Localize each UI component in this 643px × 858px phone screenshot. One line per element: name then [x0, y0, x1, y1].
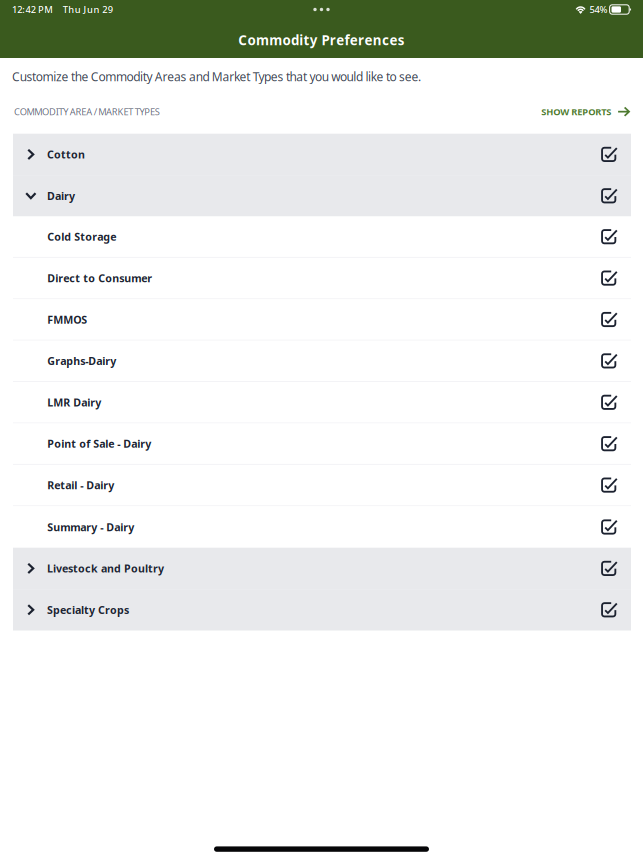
staticText: Cotton	[47, 147, 85, 161]
button[interactable]: Dairy	[13, 175, 631, 216]
staticText: Livestock and Poultry	[47, 561, 164, 575]
button[interactable]: Toggle LMR Dairy	[589, 383, 631, 422]
button[interactable]: Toggle Summary - Dairy	[589, 507, 631, 546]
staticText: FMMOS	[47, 312, 87, 327]
button[interactable]: Toggle Retail - Dairy	[589, 466, 631, 505]
button[interactable]: Cotton	[13, 134, 631, 175]
staticText: Thu Jun 29	[63, 3, 113, 16]
staticText: SHOW REPORTS	[541, 105, 611, 118]
staticText: Commodity Preferences	[238, 31, 405, 49]
staticText: Retail - Dairy	[47, 478, 114, 492]
button[interactable]: Toggle Graphs-Dairy	[589, 341, 631, 380]
staticText: LMR Dairy	[47, 395, 101, 409]
button[interactable]: Toggle Point of Sale - Dairy	[589, 424, 631, 463]
button[interactable]: Toggle Direct to Consumer	[589, 259, 631, 298]
button[interactable]: Livestock and Poultry	[13, 548, 631, 589]
button[interactable]: Cold Storage	[13, 216, 631, 258]
button[interactable]: SHOW REPORTS	[541, 105, 630, 118]
button[interactable]: LMR Dairy	[13, 382, 631, 423]
button[interactable]: Toggle Dairy	[589, 176, 631, 215]
button[interactable]: Point of Sale - Dairy	[13, 423, 631, 465]
button[interactable]: Toggle FMMOS	[589, 300, 631, 339]
button[interactable]: FMMOS	[13, 299, 631, 341]
button[interactable]: Toggle Cold Storage	[589, 217, 631, 256]
staticText: 54%	[590, 3, 608, 16]
staticText: Dairy	[47, 189, 75, 203]
button[interactable]: Direct to Consumer	[13, 258, 631, 299]
button[interactable]: Specialty Crops	[13, 589, 631, 630]
staticText: COMMODITY AREA / MARKET TYPES	[14, 105, 160, 118]
staticText: Summary - Dairy	[47, 520, 134, 534]
staticText: Cold Storage	[47, 230, 116, 244]
staticText: Direct to Consumer	[47, 271, 152, 285]
button[interactable]: Toggle Livestock and Poultry	[589, 549, 631, 588]
staticText: Graphs-Dairy	[47, 354, 116, 368]
staticText: Specialty Crops	[47, 603, 129, 617]
staticText: Customize the Commodity Areas and Market…	[12, 68, 421, 84]
button[interactable]: Toggle Cotton	[589, 135, 631, 174]
button[interactable]: Summary - Dairy	[13, 506, 631, 548]
staticText: Point of Sale - Dairy	[47, 437, 151, 451]
button[interactable]: Toggle Specialty Crops	[589, 590, 631, 629]
button[interactable]: Retail - Dairy	[13, 465, 631, 506]
button[interactable]: Graphs-Dairy	[13, 341, 631, 382]
staticText: 12:42 PM	[12, 3, 53, 16]
